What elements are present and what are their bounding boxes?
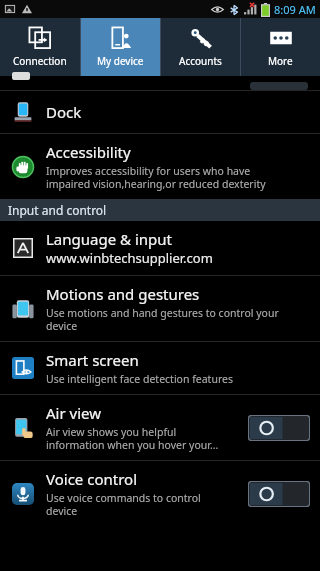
staticText: Smart screen [46,350,139,370]
staticText: Use motions and hand gestures to control… [46,306,279,333]
button[interactable]: Air view [0,395,320,460]
button[interactable]: Smart screen [0,342,320,394]
button[interactable]: Language & input [0,221,320,275]
staticText: Dock [46,102,82,122]
staticText: Accounts [179,54,222,68]
button[interactable] [0,76,320,90]
button[interactable]: Dock [0,91,320,133]
staticText: Improves accessibility for users who hav… [46,164,266,191]
staticText: More [268,54,293,68]
staticText: 8:09 AM [274,2,316,17]
button[interactable]: Accessibility [0,134,320,199]
button[interactable]: Accounts [161,18,240,76]
staticText: Voice control [46,469,138,489]
staticText: Connection [13,54,67,68]
staticText: www.winbtechsupplier.com [46,249,213,267]
staticText: Air view shows you helpful information w… [46,425,219,452]
staticText: Motions and gestures [46,284,200,304]
button[interactable]: Toggle [248,481,310,507]
button[interactable]: My device [81,18,160,76]
button[interactable]: Voice control [0,461,320,526]
staticText: Air view [46,403,101,423]
button[interactable]: Motions and gestures [0,276,320,341]
staticText: Accessibility [46,142,131,162]
staticText: Input and control [8,202,107,218]
button[interactable]: Connection [0,18,80,76]
staticText: My device [97,54,144,68]
button[interactable]: More [241,18,320,76]
button[interactable]: Toggle [248,415,310,441]
staticText: Language & input [46,229,172,249]
staticText: Use intelligent face detection features [46,372,233,386]
staticText: Use voice commands to control device [46,491,201,518]
